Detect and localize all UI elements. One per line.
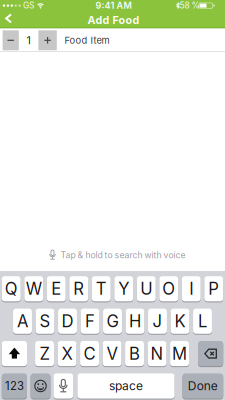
button[interactable]: J: [148, 309, 167, 335]
button[interactable]: O: [159, 276, 178, 302]
button[interactable]: M: [170, 341, 189, 367]
button[interactable]: K: [171, 309, 189, 335]
button[interactable]: N: [148, 341, 166, 367]
button[interactable]: space: [77, 373, 175, 399]
staticText: V: [106, 343, 117, 364]
button[interactable]: Done: [182, 373, 223, 399]
button[interactable]: Increase quantity: [38, 30, 57, 50]
staticText: Food Item: [64, 35, 109, 46]
staticText: G: [106, 311, 118, 331]
button[interactable]: E: [47, 276, 66, 302]
staticText: B: [129, 343, 140, 364]
staticText: O: [162, 279, 175, 299]
staticText: 58 %: [179, 0, 199, 11]
staticText: A: [17, 311, 28, 331]
staticText: Tap & hold to search with voice: [60, 250, 185, 260]
button[interactable]: P: [204, 276, 223, 302]
button[interactable]: S: [35, 309, 54, 335]
staticText: T: [96, 279, 107, 299]
staticText: I: [189, 279, 193, 299]
button[interactable]: Food Item: [64, 30, 225, 51]
staticText: 9:41 AM: [95, 0, 131, 11]
button[interactable]: V: [103, 341, 121, 367]
staticText: K: [174, 311, 185, 331]
button[interactable]: T: [92, 276, 111, 302]
button[interactable]: U: [137, 276, 156, 302]
button[interactable]: Back: [1, 12, 15, 25]
staticText: F: [85, 311, 95, 331]
staticText: X: [61, 343, 72, 364]
button[interactable]: D: [58, 309, 77, 335]
button[interactable]: F: [80, 309, 99, 335]
staticText: L: [198, 311, 207, 331]
staticText: space: [109, 379, 143, 393]
button[interactable]: Decrease quantity: [3, 30, 19, 50]
button[interactable]: Q: [2, 276, 21, 302]
staticText: Y: [118, 279, 129, 299]
staticText: 123: [5, 379, 24, 393]
button[interactable]: R: [69, 276, 88, 302]
staticText: J: [152, 311, 162, 331]
staticText: GS: [23, 0, 34, 11]
button[interactable]: W: [24, 276, 43, 302]
staticText: Q: [5, 279, 18, 299]
button[interactable]: G: [103, 309, 122, 335]
button[interactable]: H: [125, 309, 144, 335]
staticText: P: [208, 279, 219, 299]
staticText: W: [26, 279, 42, 299]
button[interactable]: Z: [35, 341, 54, 367]
staticText: Add Food: [87, 13, 139, 26]
staticText: C: [83, 343, 95, 364]
button[interactable]: Y: [114, 276, 133, 302]
button[interactable]: 123: [2, 373, 27, 399]
button[interactable]: A: [13, 309, 32, 335]
button[interactable]: X: [58, 341, 76, 367]
staticText: S: [39, 311, 50, 331]
staticText: U: [140, 279, 152, 299]
staticText: Z: [39, 343, 49, 364]
button[interactable]: Emoji: [31, 373, 50, 399]
staticText: R: [73, 279, 84, 299]
staticText: 1: [26, 34, 30, 47]
staticText: H: [129, 311, 141, 331]
button[interactable]: L: [193, 309, 212, 335]
button[interactable]: B: [125, 341, 144, 367]
staticText: D: [61, 311, 73, 331]
button[interactable]: I: [182, 276, 201, 302]
staticText: N: [150, 343, 163, 364]
staticText: Done: [188, 379, 218, 393]
button[interactable]: Shift: [2, 341, 27, 367]
button[interactable]: Delete: [198, 341, 223, 367]
staticText: E: [51, 279, 61, 299]
button[interactable]: Dictate: [53, 373, 73, 399]
staticText: M: [172, 343, 187, 364]
button[interactable]: C: [80, 341, 99, 367]
